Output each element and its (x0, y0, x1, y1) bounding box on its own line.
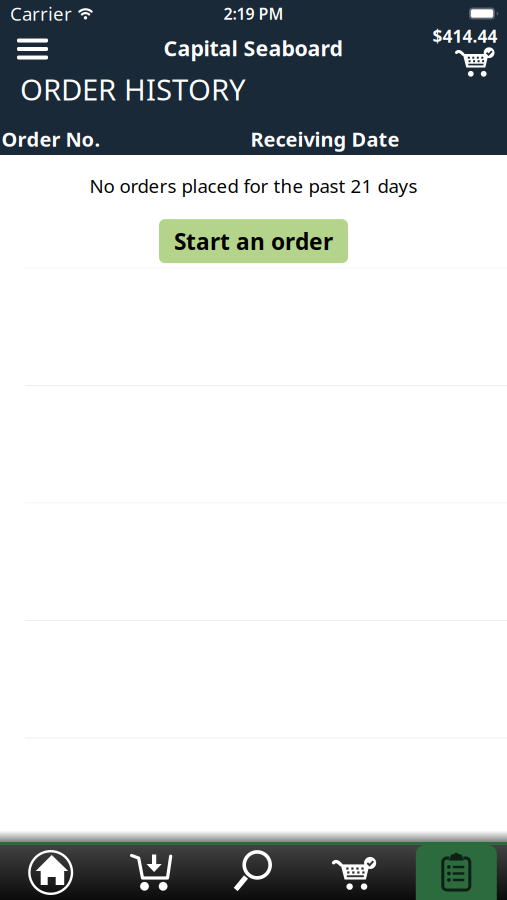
staticText: Carrier (10, 1, 72, 26)
button[interactable]: Start an order (159, 219, 348, 263)
staticText: Order No. (1, 126, 100, 152)
staticText: No orders placed for the past 21 days (89, 173, 417, 198)
button[interactable] (101, 845, 203, 900)
staticText: ORDER HISTORY (20, 69, 246, 108)
staticText: $414.44 (432, 24, 497, 47)
staticText: Receiving Date (250, 126, 399, 152)
staticText: Capital Seaboard (163, 34, 342, 62)
button[interactable] (0, 845, 101, 900)
button[interactable] (203, 845, 304, 900)
button[interactable]: $414.44 (432, 24, 497, 78)
staticText: Start an order (174, 226, 333, 256)
button[interactable] (406, 845, 507, 900)
staticText: 2:19 PM (223, 3, 283, 24)
button[interactable] (17, 38, 48, 59)
button[interactable] (304, 845, 406, 900)
